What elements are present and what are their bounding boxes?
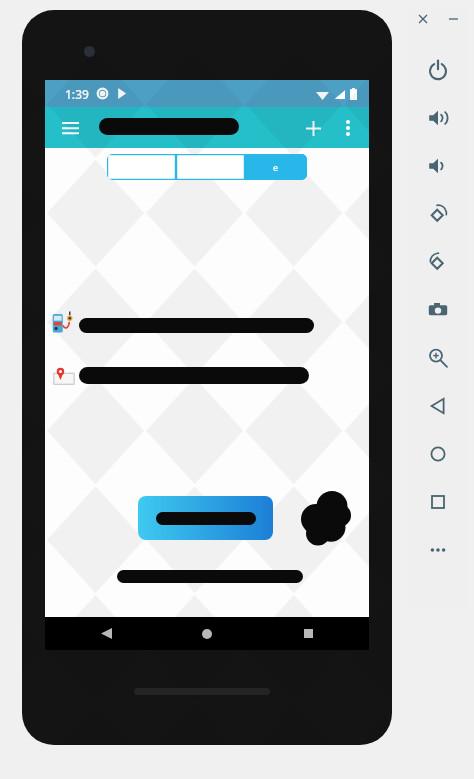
staticText: 1:39 bbox=[65, 86, 89, 102]
button[interactable] bbox=[49, 308, 369, 338]
button[interactable]: Rotate left bbox=[408, 190, 468, 238]
staticText: e bbox=[273, 161, 279, 173]
button[interactable]: Volume up bbox=[408, 94, 468, 142]
button[interactable]: Home bbox=[190, 617, 224, 650]
button[interactable]: More bbox=[408, 526, 468, 574]
button[interactable]: Add bbox=[295, 110, 331, 146]
button[interactable]: Open navigation menu bbox=[53, 111, 87, 145]
button[interactable]: Power bbox=[408, 46, 468, 94]
button[interactable] bbox=[176, 154, 245, 180]
button[interactable]: Back bbox=[408, 382, 468, 430]
button[interactable]: Minimize bbox=[443, 9, 463, 29]
button[interactable] bbox=[49, 360, 369, 390]
button[interactable]: Recent apps bbox=[291, 617, 325, 650]
button[interactable]: Zoom bbox=[408, 334, 468, 382]
button[interactable]: Overview bbox=[408, 478, 468, 526]
button[interactable]: Rotate right bbox=[408, 238, 468, 286]
button[interactable]: Back bbox=[89, 617, 123, 650]
button[interactable] bbox=[138, 496, 273, 540]
button[interactable]: Volume down bbox=[408, 142, 468, 190]
button[interactable]: Home bbox=[408, 430, 468, 478]
button[interactable]: Close bbox=[413, 9, 433, 29]
button[interactable]: e bbox=[245, 154, 307, 180]
button[interactable]: More options bbox=[331, 111, 365, 145]
button[interactable] bbox=[107, 154, 176, 180]
button[interactable]: Take screenshot bbox=[408, 286, 468, 334]
